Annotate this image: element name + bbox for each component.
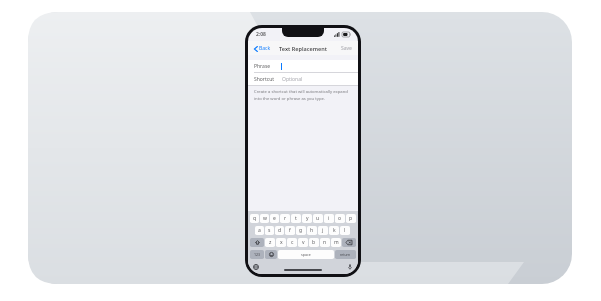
staticText: h <box>310 227 314 234</box>
staticText: q <box>253 215 257 222</box>
button[interactable]: g <box>296 226 306 235</box>
button[interactable]: w <box>260 214 269 223</box>
staticText: y <box>306 215 309 222</box>
button[interactable]: y <box>302 214 312 223</box>
staticText: f <box>289 227 291 234</box>
staticText: 2:08 <box>256 31 266 38</box>
staticText: Shortcut <box>254 76 275 83</box>
button[interactable]: Phrase <box>248 60 358 73</box>
button[interactable]: 123 <box>250 250 264 259</box>
staticText: return <box>340 252 351 257</box>
staticText: Save <box>341 45 352 52</box>
staticText: r <box>284 215 287 222</box>
staticText: i <box>328 215 330 222</box>
button[interactable]: h <box>307 226 317 235</box>
staticText: space <box>301 252 311 257</box>
staticText: z <box>269 239 272 246</box>
button[interactable]: i <box>324 214 334 223</box>
button[interactable]: f <box>285 226 295 235</box>
staticText: Text Replacement <box>279 45 327 52</box>
staticText: g <box>299 227 303 234</box>
staticText: u <box>316 215 320 222</box>
staticText: 123 <box>254 252 261 257</box>
button[interactable]: Change keyboard language <box>252 263 260 271</box>
staticText: k <box>333 227 336 234</box>
button[interactable]: Dictate <box>346 263 354 271</box>
staticText: n <box>323 239 327 246</box>
staticText: e <box>273 215 276 222</box>
button[interactable]: d <box>275 226 284 235</box>
staticText: m <box>334 239 339 246</box>
button[interactable]: q <box>250 214 259 223</box>
button[interactable]: j <box>318 226 328 235</box>
button[interactable]: l <box>340 226 350 235</box>
button[interactable]: k <box>329 226 339 235</box>
button[interactable]: Delete <box>342 238 356 247</box>
button[interactable]: Emoji <box>265 250 277 259</box>
staticText: v <box>302 239 305 246</box>
button[interactable]: x <box>276 238 286 247</box>
button[interactable]: Back <box>252 43 273 54</box>
button[interactable]: c <box>287 238 297 247</box>
staticText: p <box>349 215 353 222</box>
staticText: o <box>338 215 342 222</box>
staticText: l <box>344 227 346 234</box>
button[interactable]: t <box>291 214 301 223</box>
staticText: d <box>278 227 282 234</box>
button[interactable]: m <box>331 238 341 247</box>
button[interactable]: v <box>298 238 308 247</box>
staticText: Optional <box>282 76 303 83</box>
button[interactable]: z <box>265 238 275 247</box>
staticText: j <box>322 227 324 234</box>
button[interactable]: e <box>270 214 279 223</box>
staticText: a <box>258 227 261 234</box>
staticText: c <box>291 239 294 246</box>
button[interactable]: n <box>320 238 330 247</box>
staticText: Phrase <box>254 63 271 70</box>
button[interactable]: Shortcut <box>248 73 358 86</box>
button[interactable]: a <box>255 226 264 235</box>
button[interactable]: p <box>346 214 356 223</box>
staticText: w <box>263 215 267 222</box>
button[interactable]: r <box>280 214 290 223</box>
button[interactable]: o <box>335 214 345 223</box>
button[interactable]: u <box>313 214 323 223</box>
staticText: s <box>268 227 271 234</box>
button[interactable]: Save <box>339 43 354 54</box>
button[interactable]: space <box>278 250 334 259</box>
staticText: x <box>280 239 283 246</box>
button[interactable]: b <box>309 238 319 247</box>
button[interactable]: return <box>335 250 356 259</box>
button[interactable]: s <box>265 226 274 235</box>
staticText: Back <box>259 45 271 52</box>
staticText: Create a shortcut that will automaticall… <box>254 89 352 101</box>
button[interactable]: Shift <box>250 238 264 247</box>
staticText: b <box>312 239 316 246</box>
staticText: t <box>295 215 297 222</box>
